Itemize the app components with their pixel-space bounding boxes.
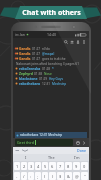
button[interactable]: Gandis — [15, 46, 87, 51]
staticText: Mechstrp — [52, 82, 67, 86]
button[interactable]: $ — [57, 172, 64, 180]
button[interactable]: Gandis — [15, 51, 87, 56]
staticText: I — [25, 155, 27, 160]
staticText: & — [67, 174, 70, 179]
button[interactable]: : — [28, 172, 34, 180]
staticText: nl/do — [42, 47, 50, 51]
staticText: 3 — [30, 164, 33, 169]
staticText: Nakcoswt joins afted bonching 3 pages 61 — [16, 62, 80, 66]
button[interactable]: rabothekara — [15, 81, 87, 86]
button[interactable]: - — [14, 172, 20, 180]
staticText: rabothekara 12:31 Mechstrp — [20, 133, 63, 137]
button[interactable]: Send — [81, 140, 87, 146]
button[interactable]: 4 — [35, 162, 41, 170]
staticText: * — [52, 67, 54, 71]
button[interactable]: 3 — [28, 162, 34, 170]
staticText: ( — [44, 174, 46, 179]
button[interactable]: Gandis — [15, 56, 87, 61]
staticText: 12:31 — [42, 82, 51, 86]
button[interactable]: 8 — [65, 162, 72, 170]
staticText: Gandis — [19, 51, 31, 56]
staticText: Gandis — [19, 56, 31, 61]
staticText: : — [30, 174, 32, 179]
staticText: 6 — [51, 164, 54, 169]
button[interactable]: " — [81, 172, 88, 180]
staticText: rabothekara — [19, 81, 41, 86]
staticText: blackstone — [19, 76, 38, 81]
staticText: ) — [52, 174, 54, 179]
button[interactable]: Zephyrd — [15, 71, 87, 76]
button[interactable]: Chat with others — [15, 6, 87, 19]
button[interactable]: robo3renska — [15, 66, 87, 71]
staticText: @ — [75, 174, 79, 179]
button[interactable]: Done — [77, 148, 87, 153]
staticText: 8 — [67, 164, 70, 169]
button[interactable]: Emoji — [75, 140, 81, 146]
staticText: 01:28 — [42, 67, 51, 71]
button[interactable]: I — [13, 154, 39, 161]
staticText: 9 — [75, 164, 78, 169]
button[interactable]: ; — [35, 172, 41, 180]
staticText: / — [23, 174, 25, 179]
staticText: Gandis — [19, 46, 31, 51]
staticText: irc.lan — [15, 32, 25, 37]
staticText: 01:38 — [34, 72, 43, 76]
button[interactable]: 2 — [21, 162, 27, 170]
button[interactable]: 9 — [73, 162, 80, 170]
staticText: Zephyrd — [19, 71, 33, 76]
staticText: - — [16, 174, 18, 179]
button[interactable]: @ — [73, 172, 80, 180]
staticText: 14:40 — [47, 32, 56, 37]
staticText: 4 — [37, 164, 40, 169]
staticText: 01:27 — [32, 57, 41, 61]
staticText: Chat with others — [22, 8, 81, 18]
button[interactable]: Users — [69, 39, 75, 45]
staticText: 01:29 — [39, 77, 48, 81]
staticText: 1 — [16, 164, 19, 169]
button[interactable]: ( — [42, 172, 48, 180]
button[interactable]: Geet third — [17, 139, 71, 146]
button[interactable]: ) — [49, 172, 56, 180]
staticText: $ — [59, 174, 62, 179]
button[interactable]: Person — [75, 39, 81, 45]
staticText: robo3renska — [19, 66, 41, 71]
button[interactable]: Nakcoswt joins afted bonching 3 pages 61 — [15, 61, 87, 66]
button[interactable]: rabothekara 12:31 Mechstrp — [15, 132, 87, 138]
staticText: Hey Guys — [49, 77, 63, 81]
button[interactable]: Search — [63, 39, 69, 45]
staticText: 2 — [23, 164, 26, 169]
staticText: 01:27 — [32, 47, 41, 51]
button[interactable]: 7 — [57, 162, 64, 170]
staticText: I'm — [74, 155, 80, 160]
staticText: Done — [77, 148, 87, 153]
staticText: 0 — [83, 164, 86, 169]
button[interactable]: 0 — [81, 162, 88, 170]
button[interactable]: / — [21, 172, 27, 180]
staticText: " — [84, 174, 86, 179]
staticText: 5 — [44, 164, 47, 169]
staticText: Geet third — [17, 140, 34, 145]
staticText: Nose — [44, 72, 52, 76]
staticText: goes to tsdt.the — [42, 57, 66, 61]
button[interactable]: blackstone — [15, 76, 87, 81]
staticText: ; — [37, 174, 39, 179]
button[interactable]: The — [39, 154, 64, 161]
button[interactable]: 5 — [42, 162, 48, 170]
staticText: @mapal — [42, 52, 55, 56]
button[interactable]: I'm — [64, 154, 89, 161]
button[interactable]: More — [81, 39, 87, 45]
staticText: 7 — [59, 164, 62, 169]
staticText: The — [48, 155, 55, 160]
staticText: 01:27 — [32, 52, 41, 56]
button[interactable]: 6 — [49, 162, 56, 170]
button[interactable]: 1 — [14, 162, 20, 170]
button[interactable]: & — [65, 172, 72, 180]
